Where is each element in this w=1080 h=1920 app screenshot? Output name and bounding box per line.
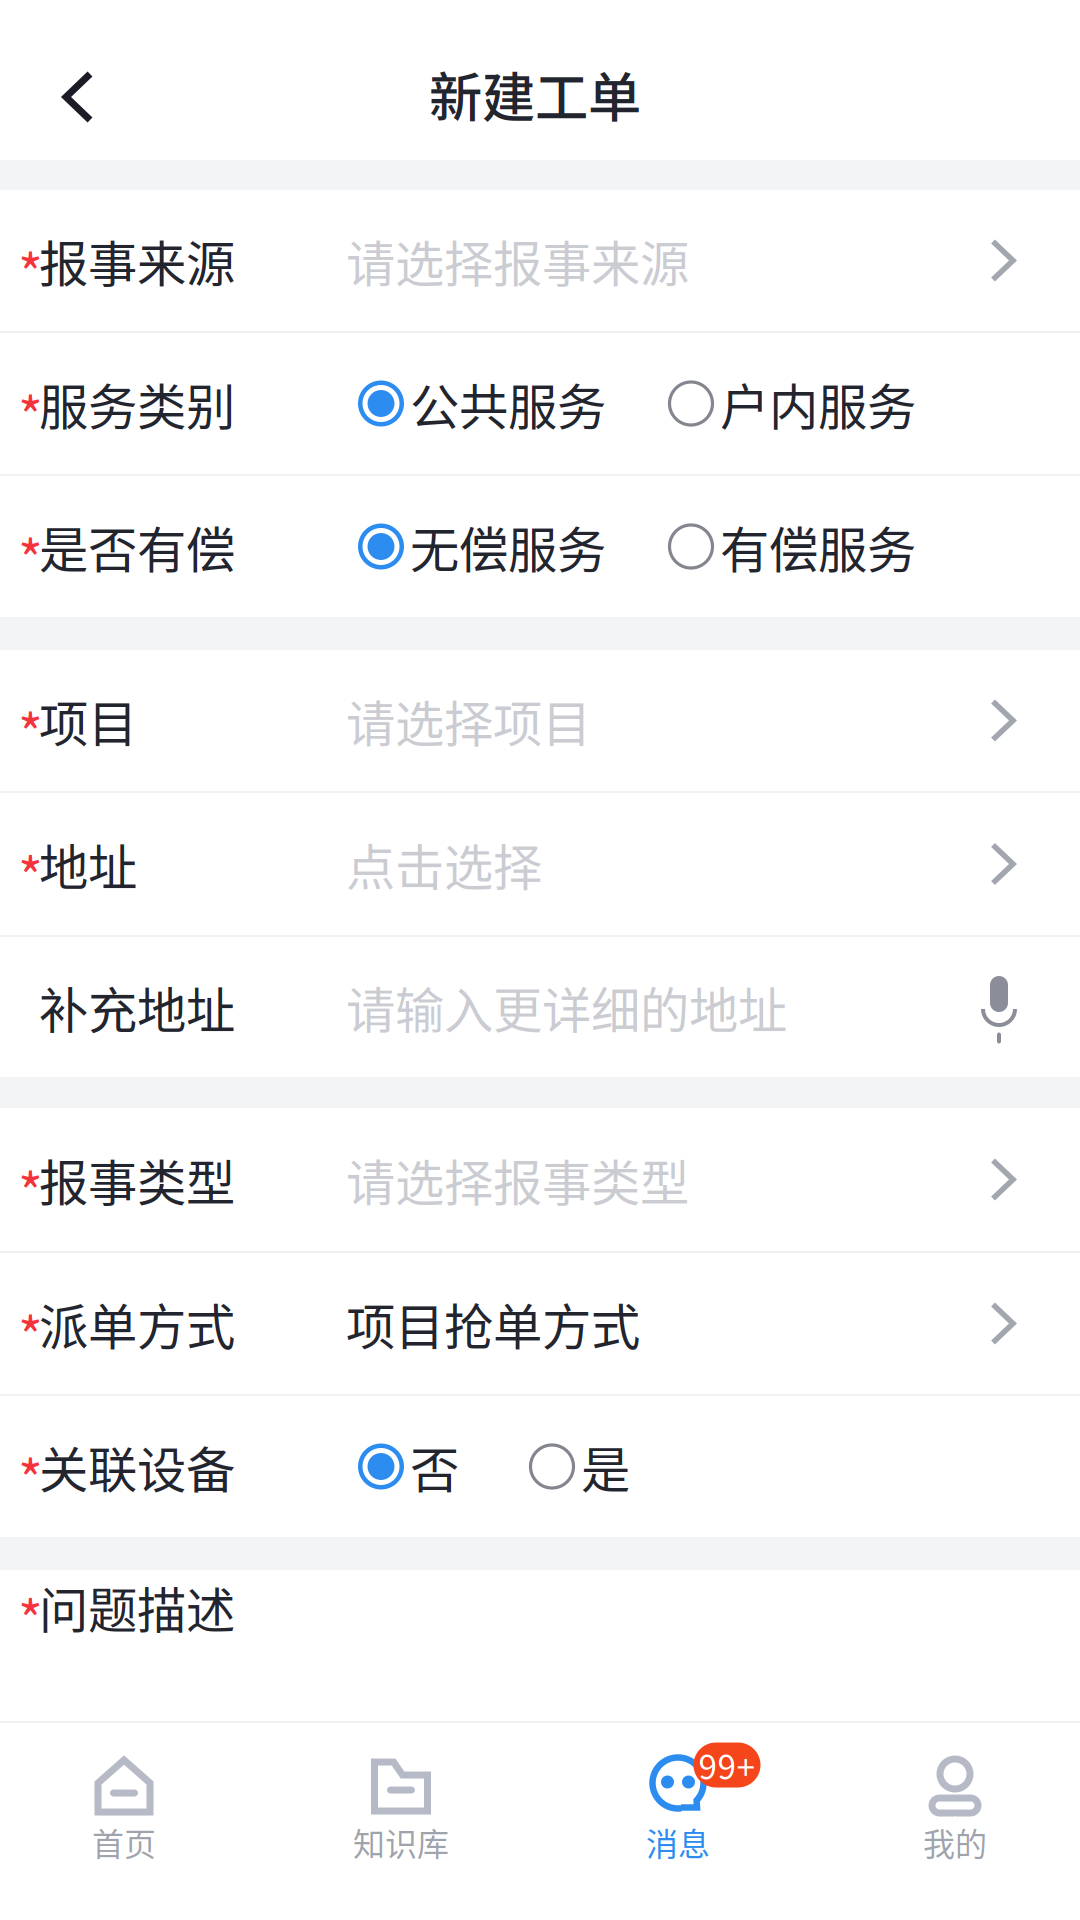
button[interactable]: 公共服务 (358, 368, 606, 439)
button[interactable]: 户内服务 (668, 368, 916, 439)
staticText: 我的 (923, 1819, 987, 1865)
staticText: * (18, 1438, 43, 1515)
staticText: 项目 (39, 685, 137, 756)
staticText: * (18, 978, 43, 1056)
button[interactable]: * (0, 650, 1080, 791)
button[interactable]: 否 (358, 1431, 459, 1502)
staticText: 报事类型 (39, 1144, 235, 1215)
staticText: 是否有偿 (39, 511, 235, 582)
staticText: 项目抢单方式 (346, 1288, 640, 1359)
button[interactable]: 首页 (4, 1723, 244, 1920)
staticText: 消息 (646, 1819, 710, 1865)
staticText: 报事来源 (39, 225, 235, 296)
button[interactable]: Voice input (978, 970, 1020, 1044)
button[interactable]: Back (0, 0, 133, 160)
staticText: 首页 (92, 1819, 156, 1865)
button[interactable]: 我的 (835, 1723, 1075, 1920)
staticText: * (18, 1151, 43, 1228)
staticText: 无偿服务 (410, 511, 606, 582)
staticText: * (18, 692, 43, 769)
staticText: 户内服务 (720, 368, 916, 439)
staticText: 派单方式 (39, 1288, 235, 1359)
staticText: 请选择项目 (346, 685, 591, 756)
staticText: 99+ (698, 1741, 755, 1789)
staticText: * (18, 232, 43, 309)
staticText: 关联设备 (39, 1431, 235, 1502)
staticText: 请输入更详细的地址 (346, 971, 787, 1043)
staticText: 新建工单 (429, 55, 641, 133)
button[interactable]: 99+ (558, 1723, 798, 1920)
staticText: * (18, 835, 43, 913)
staticText: 问题描述 (39, 1571, 235, 1643)
button[interactable]: * (0, 1253, 1080, 1394)
button[interactable]: 无偿服务 (358, 511, 606, 582)
button[interactable]: * (0, 190, 1080, 331)
button[interactable]: * (0, 793, 1080, 935)
staticText: 有偿服务 (720, 511, 916, 582)
staticText: 知识库 (353, 1819, 449, 1865)
staticText: 公共服务 (410, 368, 606, 439)
button[interactable]: 是 (529, 1431, 630, 1502)
staticText: 补充地址 (39, 971, 235, 1043)
staticText: * (18, 375, 43, 452)
staticText: 否 (410, 1431, 459, 1502)
staticText: 点击选择 (346, 828, 542, 900)
staticText: 地址 (39, 828, 137, 900)
staticText: * (18, 518, 43, 595)
staticText: * (18, 1578, 43, 1656)
button[interactable]: * (0, 1108, 1080, 1251)
staticText: 请选择报事类型 (346, 1144, 689, 1215)
staticText: 是 (581, 1431, 630, 1502)
button[interactable]: 有偿服务 (668, 511, 916, 582)
staticText: * (18, 1295, 43, 1372)
staticText: 请选择报事来源 (346, 225, 689, 296)
button[interactable]: 知识库 (281, 1723, 521, 1920)
staticText: 服务类别 (39, 368, 235, 439)
